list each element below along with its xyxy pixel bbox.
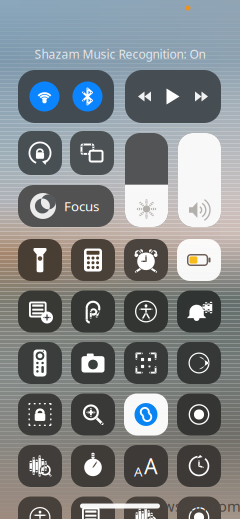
button[interactable]: Flashlight xyxy=(18,239,62,281)
button[interactable]: Music Recognition xyxy=(124,393,168,435)
button[interactable]: Previous xyxy=(138,91,151,101)
staticText: A xyxy=(134,462,143,480)
staticText: A xyxy=(144,452,158,480)
button[interactable]: Sound Recognition xyxy=(177,290,221,332)
button[interactable]: Wi-Fi xyxy=(29,81,59,111)
button[interactable]: Guided Access xyxy=(18,393,62,435)
button[interactable]: Accessibility xyxy=(18,496,62,519)
staticText: Shazam Music Recognition: On xyxy=(34,46,205,62)
button[interactable]: Connectivity xyxy=(18,70,114,123)
button[interactable]: Dark Mode xyxy=(177,342,221,384)
button[interactable]: Bluetooth xyxy=(72,81,102,111)
button[interactable]: Now Playing xyxy=(125,70,221,123)
staticText: wsxdn.com xyxy=(163,496,240,516)
button[interactable]: Focus xyxy=(18,185,114,227)
button[interactable]: Text Size xyxy=(124,445,168,487)
button[interactable]: Hearing xyxy=(71,290,115,332)
button[interactable]: Next xyxy=(195,91,208,101)
button[interactable]: Calculator xyxy=(71,239,115,281)
button[interactable]: New Note xyxy=(18,290,62,332)
button[interactable]: Low Power Mode xyxy=(177,239,221,281)
button[interactable]: Sound Recognition xyxy=(18,445,62,487)
button[interactable]: Home xyxy=(177,496,221,519)
staticText: Focus xyxy=(64,197,99,215)
button[interactable]: Brightness xyxy=(125,133,168,227)
button[interactable]: Code Scanner xyxy=(124,342,168,384)
button[interactable]: Alarm xyxy=(124,239,168,281)
button[interactable]: Play xyxy=(166,88,179,104)
button[interactable]: Timer xyxy=(177,445,221,487)
button[interactable]: Apple TV Remote xyxy=(18,342,62,384)
button[interactable]: Voice Memos xyxy=(124,496,168,519)
button[interactable]: Magnifier xyxy=(71,393,115,435)
button[interactable]: Screen Recording xyxy=(177,393,221,435)
button[interactable]: Stopwatch xyxy=(71,445,115,487)
button[interactable]: Volume xyxy=(178,133,221,227)
button[interactable]: Notes xyxy=(71,496,115,519)
button[interactable]: Screen Mirroring xyxy=(70,131,114,175)
button[interactable]: Camera xyxy=(71,342,115,384)
button[interactable]: Accessibility Shortcuts xyxy=(124,290,168,332)
button[interactable]: Rotation Lock xyxy=(18,131,62,175)
